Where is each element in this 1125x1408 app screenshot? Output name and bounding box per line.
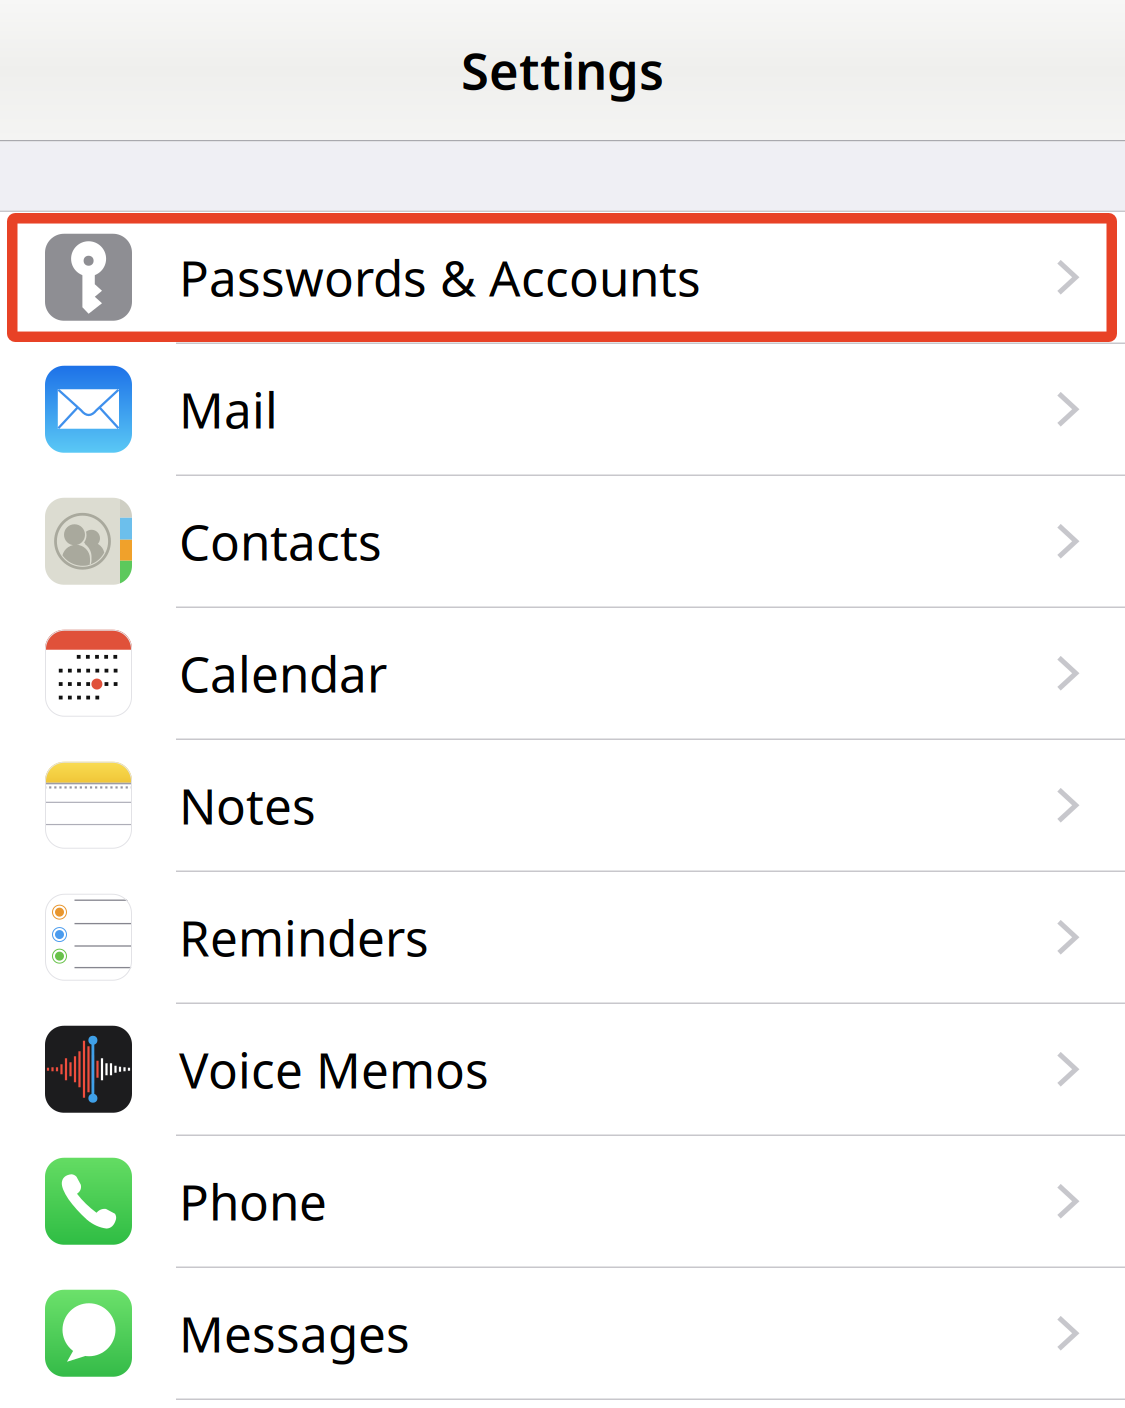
button[interactable]: Calendar: [0, 608, 1125, 740]
staticText: Notes: [179, 772, 316, 838]
staticText: Reminders: [179, 904, 429, 970]
staticText: Messages: [179, 1300, 410, 1366]
button[interactable]: Contacts: [0, 476, 1125, 608]
button[interactable]: Mail: [0, 344, 1125, 476]
button[interactable]: Notes: [0, 740, 1125, 872]
staticText: Voice Memos: [179, 1036, 489, 1102]
staticText: Contacts: [179, 508, 382, 574]
staticText: Passwords & Accounts: [179, 244, 701, 310]
button[interactable]: Voice Memos: [0, 1004, 1125, 1136]
button[interactable]: Phone: [0, 1136, 1125, 1268]
button[interactable]: Reminders: [0, 872, 1125, 1004]
staticText: Settings: [461, 36, 664, 104]
button[interactable]: Messages: [0, 1268, 1125, 1400]
staticText: Mail: [179, 376, 278, 442]
staticText: Calendar: [179, 640, 387, 706]
staticText: Phone: [179, 1168, 327, 1234]
button[interactable]: Passwords & Accounts: [0, 212, 1125, 344]
